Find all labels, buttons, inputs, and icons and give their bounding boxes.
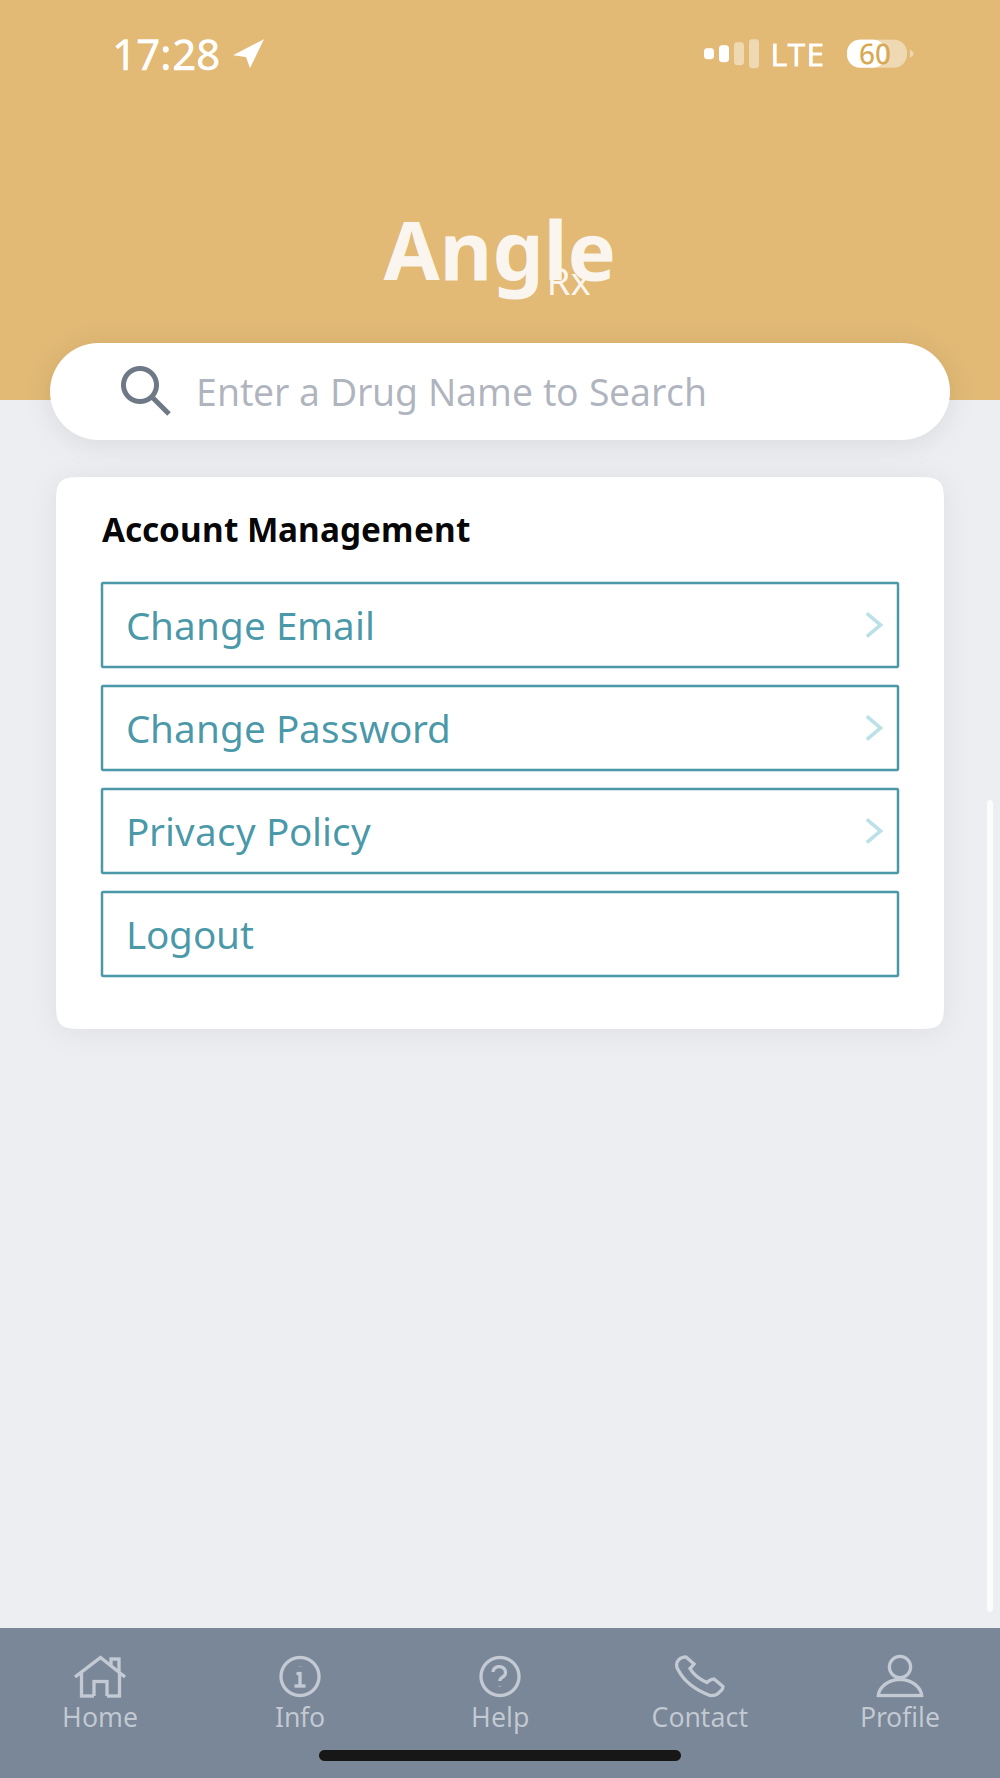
staticText: Profile	[860, 1699, 940, 1734]
staticText: LTE	[770, 31, 825, 76]
staticText: 60	[859, 35, 891, 72]
button[interactable]: Home	[0, 1656, 200, 1734]
staticText: Change Password	[126, 702, 451, 754]
staticText: Angle	[383, 195, 616, 303]
staticText: Enter a Drug Name to Search	[196, 367, 707, 416]
button[interactable]: Profile	[800, 1656, 1000, 1734]
staticText: Account Management	[102, 507, 470, 551]
button[interactable]: Change Email	[102, 583, 898, 667]
staticText: Help	[471, 1699, 529, 1734]
staticText: Home	[62, 1699, 138, 1734]
staticText: Rx	[546, 254, 590, 306]
staticText: Info	[275, 1699, 325, 1734]
button[interactable]: Contact	[600, 1656, 800, 1734]
button[interactable]: Info	[200, 1656, 400, 1734]
button[interactable]: Help	[400, 1656, 600, 1734]
button[interactable]: Logout	[102, 892, 898, 976]
staticText: Logout	[126, 908, 254, 960]
button[interactable]: Change Password	[102, 686, 898, 770]
button[interactable]: Privacy Policy	[102, 789, 898, 873]
staticText: 17:28	[112, 25, 220, 82]
staticText: Change Email	[126, 599, 375, 651]
staticText: Contact	[651, 1699, 748, 1734]
staticText: Privacy Policy	[126, 805, 371, 857]
